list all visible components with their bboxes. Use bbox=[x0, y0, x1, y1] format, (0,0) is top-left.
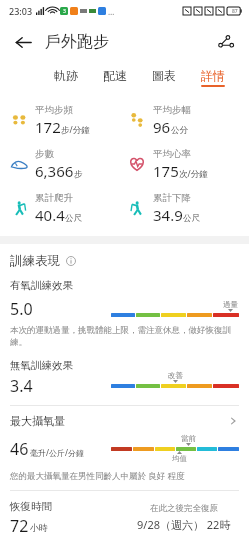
staticText: 步 bbox=[74, 169, 83, 180]
staticText: 當前 bbox=[181, 434, 196, 443]
staticText: 有氧訓練效果 bbox=[10, 279, 73, 292]
staticText: 72 bbox=[10, 515, 29, 534]
staticText: 平均心率 bbox=[153, 148, 191, 160]
button[interactable]: 最大攝氧量 bbox=[10, 414, 239, 428]
staticText: 均值 bbox=[172, 454, 187, 463]
staticText: 累計爬升 bbox=[35, 192, 73, 204]
staticText: 公尺 bbox=[65, 213, 82, 224]
staticText: 5.0 bbox=[10, 298, 33, 320]
staticText: 本次的運動過量，挑戰體能上限，需注意休息，做好恢復訓練。 bbox=[10, 325, 239, 347]
staticText: … bbox=[108, 6, 115, 17]
staticText: 恢復時間 bbox=[10, 500, 52, 513]
button[interactable]: Back bbox=[8, 27, 38, 57]
staticText: 累計下降 bbox=[153, 192, 191, 204]
staticText: 3 bbox=[63, 8, 66, 15]
staticText: 46 bbox=[10, 438, 29, 460]
staticText: 96 bbox=[153, 117, 171, 137]
staticText: 過量 bbox=[223, 300, 238, 309]
staticText: 小時 bbox=[30, 522, 48, 533]
staticText: 詳情 bbox=[201, 68, 225, 83]
staticText: 40.4 bbox=[35, 205, 65, 225]
staticText: 3.4 bbox=[10, 375, 33, 397]
staticText: 您的最大攝氧量在男性同齡人中屬於 良好 程度 bbox=[10, 470, 185, 482]
button[interactable]: Info bbox=[63, 253, 79, 269]
other: More bbox=[227, 415, 239, 427]
staticText: 公分 bbox=[171, 125, 188, 136]
staticText: 公尺 bbox=[183, 213, 200, 224]
staticText: 在此之後完全復原 bbox=[150, 503, 218, 514]
staticText: 最大攝氧量 bbox=[10, 414, 65, 428]
staticText: 平均步幅 bbox=[153, 104, 191, 116]
staticText: 改善 bbox=[168, 371, 183, 380]
staticText: 次/分鐘 bbox=[179, 168, 208, 180]
staticText: 戶外跑步 bbox=[45, 32, 109, 52]
button[interactable]: 圖表 bbox=[150, 68, 178, 87]
staticText: 軌跡 bbox=[54, 68, 78, 83]
staticText: 訓練表現 bbox=[10, 253, 60, 269]
staticText: 172 bbox=[35, 117, 61, 137]
staticText: 無氧訓練效果 bbox=[10, 359, 73, 372]
staticText: 步數 bbox=[35, 148, 54, 160]
staticText: 175 bbox=[153, 161, 179, 181]
button[interactable]: 詳情 bbox=[199, 68, 227, 87]
staticText: 9/28（週六） 22時 bbox=[137, 517, 231, 532]
staticText: 步/分鐘 bbox=[61, 124, 90, 136]
button[interactable]: Share bbox=[211, 27, 241, 57]
staticText: 6,366 bbox=[35, 161, 74, 181]
button[interactable]: 軌跡 bbox=[52, 68, 80, 87]
staticText: 87 bbox=[232, 8, 238, 15]
staticText: 圖表 bbox=[152, 68, 176, 83]
staticText: 23:03 bbox=[9, 5, 33, 17]
staticText: 毫升/公斤/分鐘 bbox=[30, 447, 84, 458]
staticText: 34.9 bbox=[153, 205, 183, 225]
staticText: 平均步頻 bbox=[35, 104, 73, 116]
button[interactable]: 配速 bbox=[101, 68, 129, 87]
staticText: 配速 bbox=[103, 68, 127, 83]
